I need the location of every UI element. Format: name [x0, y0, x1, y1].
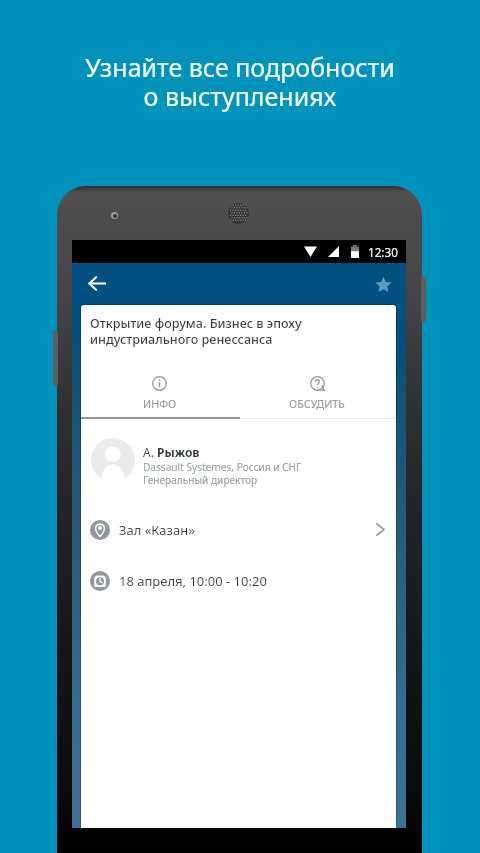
staticText: А.: [143, 444, 157, 460]
button[interactable]: Back: [76, 262, 118, 304]
staticText: Узнайте все подробности о выступлениях: [85, 50, 395, 113]
button[interactable]: Favorite: [362, 263, 404, 305]
staticText: Открытие форума. Бизнес в эпоху индустри…: [90, 315, 302, 348]
staticText: ОБСУДИТЬ: [289, 396, 345, 411]
button[interactable]: ИНФО: [81, 372, 238, 419]
staticText: Dassault Systemes, Россия и СНГ: [143, 460, 302, 474]
button[interactable]: ОБСУДИТЬ: [238, 372, 396, 419]
button[interactable]: 18 апреля, 10:00 - 10:20: [81, 555, 396, 606]
staticText: Рыжов: [157, 444, 200, 460]
staticText: Генеральный директор: [143, 473, 258, 487]
button[interactable]: Зал «Казан»: [81, 504, 396, 555]
staticText: 12:30: [368, 244, 398, 260]
staticText: ИНФО: [143, 396, 177, 411]
staticText: Зал «Казан»: [119, 521, 195, 539]
staticText: 18 апреля, 10:00 - 10:20: [119, 572, 267, 590]
button[interactable]: А.: [81, 419, 396, 504]
